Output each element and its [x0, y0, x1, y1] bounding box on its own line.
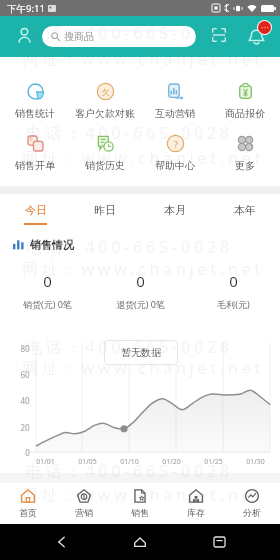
- staticText: 搜商品: [64, 30, 94, 43]
- staticText: 今日: [25, 203, 47, 217]
- button[interactable]: Notifications: [243, 20, 271, 48]
- staticText: 网址：www.chanjet.net: [22, 258, 265, 280]
- button[interactable]: ?: [140, 135, 210, 186]
- button[interactable]: 本月: [140, 194, 210, 231]
- staticText: 60: [20, 369, 30, 380]
- staticText: 01/25: [204, 457, 223, 467]
- staticText: 客户欠款对账: [75, 107, 135, 120]
- staticText: 互动营销: [155, 107, 195, 120]
- button[interactable]: 库存: [168, 483, 224, 524]
- staticText: 分析: [243, 507, 261, 518]
- staticText: 销售统计: [15, 107, 55, 120]
- button[interactable]: Recents: [201, 524, 237, 560]
- staticText: 20: [20, 422, 30, 433]
- staticText: 0: [43, 271, 52, 291]
- staticText: 0: [229, 271, 238, 291]
- button[interactable]: 今日: [0, 194, 70, 231]
- staticText: 销售: [131, 507, 149, 518]
- button[interactable]: Scan: [206, 22, 232, 48]
- staticText: 80: [20, 343, 30, 354]
- button[interactable]: Home: [122, 524, 158, 560]
- staticText: 毛利(元): [217, 298, 250, 310]
- staticText: 01/20: [162, 457, 181, 467]
- staticText: 昨日: [94, 203, 116, 217]
- button[interactable]: 本年: [210, 194, 280, 231]
- staticText: 本年: [234, 203, 256, 217]
- staticText: 40: [20, 395, 30, 406]
- button[interactable]: 商品报价: [210, 57, 280, 135]
- button[interactable]: 欠: [70, 57, 140, 135]
- staticText: 退货(元) 0笔: [116, 298, 165, 310]
- staticText: 销售情况: [30, 238, 74, 252]
- staticText: 库存: [187, 507, 205, 518]
- staticText: 01/01: [36, 457, 55, 467]
- staticText: 电话：400-665-0028: [26, 122, 233, 144]
- staticText: 网址：www.chanjet.net: [22, 484, 265, 506]
- staticText: 电话：400-665-0028: [26, 336, 233, 358]
- staticText: 销货(元) 0笔: [23, 298, 72, 310]
- staticText: 01/05: [78, 457, 97, 467]
- staticText: 网址：www.chanjet.net: [22, 357, 265, 379]
- staticText: 网址：www.chanjet.net: [22, 147, 265, 169]
- staticText: 商品报价: [225, 107, 265, 120]
- staticText: 电话：400-665-0028: [26, 460, 233, 482]
- button[interactable]: 首页: [0, 483, 56, 524]
- staticText: 0: [136, 271, 145, 291]
- staticText: 帮助中心: [155, 159, 195, 172]
- staticText: 网址：www.chanjet.net: [22, 48, 265, 70]
- button[interactable]: 更多: [210, 135, 280, 186]
- button[interactable]: 搜商品: [42, 26, 196, 47]
- staticText: 01/30: [246, 457, 265, 467]
- staticText: 欠: [102, 87, 110, 97]
- staticText: 销售开单: [15, 159, 55, 172]
- staticText: 电话：400-665-0028: [26, 22, 233, 44]
- staticText: 电话：400-665-0028: [26, 236, 233, 258]
- staticText: 01/10: [120, 457, 139, 467]
- staticText: 暂无数据: [121, 346, 161, 359]
- staticText: ?: [174, 138, 178, 150]
- staticText: 本月: [164, 203, 186, 217]
- staticText: 下午9:11: [7, 2, 45, 15]
- button[interactable]: 销售统计: [0, 57, 70, 135]
- staticText: 营销: [75, 507, 93, 518]
- staticText: 首页: [19, 507, 37, 518]
- button[interactable]: 昨日: [70, 194, 140, 231]
- button[interactable]: 营销: [56, 483, 112, 524]
- staticText: 更多: [235, 159, 255, 172]
- button[interactable]: 销货历史: [70, 135, 140, 186]
- staticText: 0: [25, 447, 30, 458]
- button[interactable]: 互动营销: [140, 57, 210, 135]
- button[interactable]: 销售: [112, 483, 168, 524]
- staticText: 销货历史: [85, 159, 125, 172]
- button[interactable]: Back: [43, 524, 79, 560]
- button[interactable]: 销售开单: [0, 135, 70, 186]
- button[interactable]: Account: [11, 22, 38, 49]
- button[interactable]: 分析: [224, 483, 280, 524]
